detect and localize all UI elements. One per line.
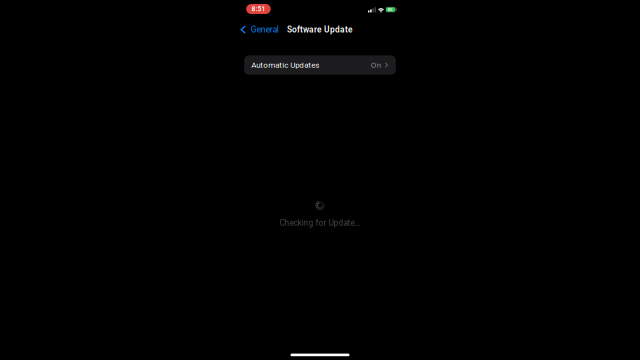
staticText: Automatic Updates [251,60,319,70]
staticText: 8:51 [251,5,265,13]
staticText: 85 [388,7,392,12]
button[interactable]: Back to General [237,21,284,38]
staticText: Software Update [287,25,353,34]
staticText: General [251,25,279,34]
staticText: Checking for Update… [279,218,360,228]
staticText: On [371,60,381,70]
button[interactable]: Automatic Updates [244,55,396,75]
